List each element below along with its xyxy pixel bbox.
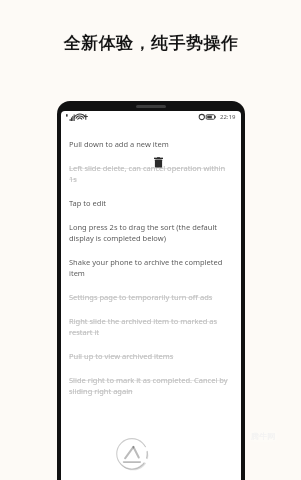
staticText: Slide right to mark it as completed. Can… <box>69 375 233 396</box>
button[interactable]: Pull down to add a new item <box>69 132 233 156</box>
staticText: Left slide delete, can cancel operation … <box>69 163 233 184</box>
staticText: Settings page to temporarily turn off ad… <box>69 292 213 302</box>
button[interactable]: Delete <box>154 157 163 168</box>
staticText: 全新体验，纯手势操作 <box>63 33 238 54</box>
button[interactable]: Left slide delete, can cancel operation … <box>69 156 233 191</box>
staticText: Tap to edit <box>69 198 107 208</box>
staticText: Long press 2s to drag the sort (the defa… <box>69 222 233 243</box>
button[interactable]: Slide right to mark it as completed. Can… <box>69 368 233 403</box>
staticText: 腾牛网 <box>251 431 275 441</box>
button[interactable]: Pull up to view archived items <box>69 344 233 368</box>
staticText: Pull down to add a new item <box>69 139 169 149</box>
staticText: 22:19 <box>220 113 236 121</box>
staticText: Pull up to view archived items <box>69 351 174 361</box>
staticText: Right slide the archived item to marked … <box>69 316 233 337</box>
button[interactable]: Right slide the archived item to marked … <box>69 309 233 344</box>
staticText: Shake your phone to archive the complete… <box>69 257 233 278</box>
button[interactable]: Tap to edit <box>69 191 233 215</box>
button[interactable]: Shake your phone to archive the complete… <box>69 250 233 285</box>
staticText: QQTN <box>139 438 206 469</box>
button[interactable]: Settings page to temporarily turn off ad… <box>69 285 233 309</box>
button[interactable]: Long press 2s to drag the sort (the defa… <box>69 215 233 250</box>
